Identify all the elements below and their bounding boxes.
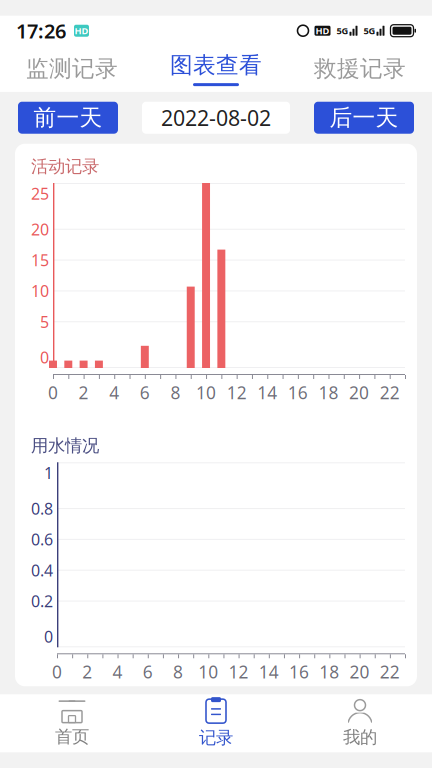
button[interactable]: 首页 [0, 694, 144, 752]
button[interactable]: 我的 [288, 694, 432, 752]
staticText: 我的 [343, 727, 377, 748]
staticText: 4 [112, 660, 122, 683]
staticText: 首页 [55, 726, 89, 747]
staticText: HD [74, 24, 88, 37]
staticText: 0 [48, 381, 58, 404]
staticText: 0.8 [31, 498, 53, 519]
staticText: 图表查看 [170, 51, 262, 79]
staticText: 10 [196, 381, 216, 404]
staticText: 记录 [199, 727, 233, 748]
staticText: 用水情况 [31, 435, 99, 456]
staticText: 0 [44, 626, 53, 647]
button[interactable]: 监测记录 [0, 46, 144, 92]
staticText: 14 [257, 381, 277, 404]
staticText: 前一天 [33, 104, 102, 132]
staticText: 1 [44, 462, 53, 483]
staticText: 6 [143, 660, 153, 683]
staticText: 4 [109, 381, 119, 404]
staticText: 12 [229, 660, 249, 683]
staticText: 0 [52, 660, 62, 683]
staticText: 12 [227, 381, 247, 404]
staticText: 20 [31, 219, 49, 240]
staticText: 16 [289, 660, 309, 683]
staticText: 2 [79, 381, 89, 404]
staticText: 25 [31, 183, 49, 204]
staticText: 15 [31, 249, 49, 271]
button[interactable]: 记录 [144, 694, 288, 752]
staticText: 5G [336, 24, 348, 37]
staticText: 17:26 [16, 17, 66, 44]
staticText: 8 [170, 381, 180, 404]
staticText: HD [315, 24, 329, 37]
staticText: 20 [349, 381, 369, 404]
staticText: 救援记录 [314, 55, 406, 83]
staticText: 后一天 [329, 104, 398, 132]
button[interactable]: 救援记录 [288, 46, 432, 92]
staticText: 活动记录 [31, 156, 99, 177]
staticText: 20 [350, 660, 370, 683]
staticText: 0.4 [31, 560, 53, 581]
staticText: 18 [319, 660, 339, 683]
staticText: 2022-08-02 [161, 103, 271, 132]
button[interactable]: 前一天 [18, 102, 118, 134]
staticText: 0.6 [31, 529, 53, 550]
staticText: 监测记录 [26, 55, 118, 83]
staticText: 0.2 [31, 590, 53, 612]
staticText: 5G [363, 24, 375, 37]
staticText: 10 [31, 280, 49, 301]
staticText: 6 [140, 381, 150, 404]
staticText: 10 [198, 660, 218, 683]
staticText: 22 [380, 660, 400, 683]
staticText: 5 [40, 311, 49, 332]
staticText: 18 [318, 381, 338, 404]
button[interactable]: 后一天 [314, 102, 414, 134]
staticText: 0 [40, 347, 49, 368]
button[interactable]: 图表查看 [144, 46, 288, 92]
staticText: 14 [259, 660, 279, 683]
staticText: 22 [380, 381, 400, 404]
staticText: 2 [82, 660, 92, 683]
staticText: 16 [288, 381, 308, 404]
staticText: 8 [173, 660, 183, 683]
